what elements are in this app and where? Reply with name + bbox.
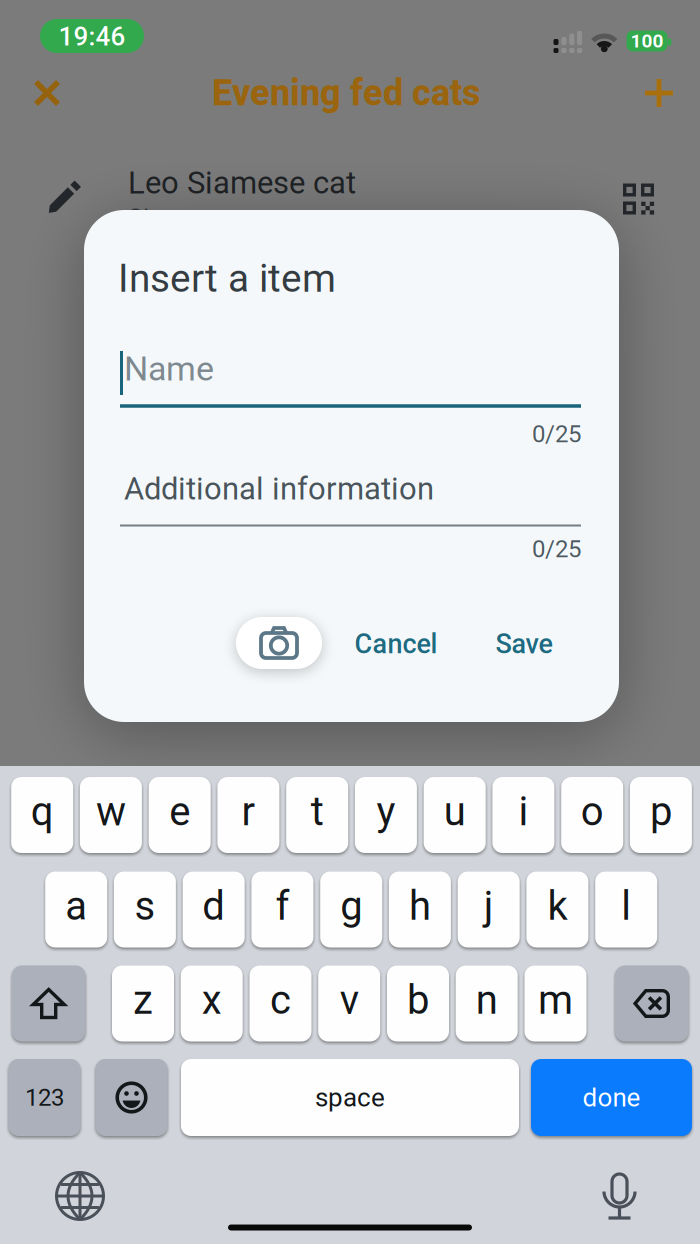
staticText: o bbox=[581, 788, 604, 835]
button[interactable]: 123 bbox=[8, 1059, 80, 1136]
button[interactable]: y bbox=[355, 777, 417, 853]
button[interactable]: Add bbox=[645, 79, 673, 107]
staticText: g bbox=[340, 883, 362, 929]
staticText: n bbox=[476, 977, 498, 1023]
button[interactable]: Delete bbox=[615, 965, 688, 1041]
staticText: Leo Siamese cat bbox=[128, 165, 356, 201]
button[interactable]: s bbox=[114, 871, 176, 947]
button[interactable]: i bbox=[492, 777, 554, 853]
button[interactable]: Emoji bbox=[95, 1059, 167, 1136]
button[interactable]: d bbox=[183, 871, 245, 947]
button[interactable]: u bbox=[424, 777, 486, 853]
staticText: Siamese bbox=[128, 204, 224, 234]
staticText: q bbox=[31, 788, 54, 835]
button[interactable]: a bbox=[45, 871, 107, 947]
staticText: Name bbox=[124, 349, 214, 389]
button[interactable]: g bbox=[320, 871, 382, 947]
staticText: Additional information bbox=[124, 471, 434, 507]
staticText: j bbox=[484, 883, 494, 929]
staticText: b bbox=[407, 977, 429, 1023]
button[interactable]: k bbox=[526, 871, 588, 947]
staticText: l bbox=[621, 883, 631, 929]
button[interactable]: b bbox=[387, 965, 449, 1041]
button[interactable]: j bbox=[458, 871, 520, 947]
button[interactable]: Cancel bbox=[354, 628, 437, 660]
button[interactable]: z bbox=[112, 965, 174, 1041]
staticText: t bbox=[311, 788, 324, 835]
button[interactable]: c bbox=[249, 965, 311, 1041]
staticText: u bbox=[444, 788, 466, 835]
button[interactable]: n bbox=[456, 965, 518, 1041]
staticText: Evening fed cats bbox=[212, 72, 480, 114]
staticText: p bbox=[650, 788, 672, 835]
staticText: Cancel bbox=[354, 628, 437, 660]
staticText: a bbox=[65, 883, 87, 929]
button[interactable]: x bbox=[181, 965, 243, 1041]
button[interactable]: q bbox=[11, 777, 73, 853]
button[interactable]: Edit bbox=[48, 181, 80, 214]
staticText: c bbox=[270, 977, 291, 1023]
staticText: v bbox=[340, 977, 359, 1023]
button[interactable]: r bbox=[217, 777, 279, 853]
staticText: s bbox=[134, 883, 155, 929]
button[interactable]: o bbox=[561, 777, 623, 853]
staticText: x bbox=[202, 977, 222, 1023]
button[interactable]: Dictation bbox=[603, 1172, 635, 1219]
staticText: Insert a item bbox=[118, 256, 336, 301]
staticText: e bbox=[169, 788, 190, 835]
button[interactable]: v bbox=[318, 965, 380, 1041]
button[interactable]: QR code bbox=[623, 183, 654, 214]
staticText: i bbox=[518, 788, 528, 835]
button[interactable]: p bbox=[630, 777, 692, 853]
staticText: y bbox=[376, 788, 395, 835]
staticText: 0/25 bbox=[532, 535, 581, 563]
staticText: d bbox=[202, 883, 225, 929]
staticText: w bbox=[96, 788, 126, 835]
button[interactable]: f bbox=[251, 871, 313, 947]
button[interactable]: Close bbox=[33, 79, 61, 107]
button[interactable]: Switch keyboard bbox=[55, 1171, 105, 1221]
staticText: r bbox=[241, 788, 255, 835]
staticText: k bbox=[547, 883, 567, 929]
button[interactable]: l bbox=[595, 871, 657, 947]
staticText: m bbox=[538, 977, 573, 1023]
staticText: space bbox=[315, 1082, 385, 1113]
button[interactable]: space bbox=[181, 1059, 519, 1136]
staticText: 100 bbox=[630, 30, 663, 52]
staticText: h bbox=[409, 883, 431, 929]
button[interactable]: Save bbox=[495, 628, 552, 660]
staticText: z bbox=[133, 977, 153, 1023]
button[interactable]: t bbox=[286, 777, 348, 853]
button[interactable]: h bbox=[389, 871, 451, 947]
staticText: 123 bbox=[25, 1083, 64, 1111]
staticText: 0/25 bbox=[532, 420, 581, 448]
button[interactable]: Take photo bbox=[236, 617, 322, 669]
button[interactable]: Shift bbox=[12, 965, 85, 1041]
button[interactable]: done bbox=[531, 1059, 692, 1136]
button[interactable]: e bbox=[149, 777, 211, 853]
staticText: done bbox=[582, 1082, 640, 1113]
button[interactable]: m bbox=[524, 965, 586, 1041]
staticText: 19:46 bbox=[58, 21, 125, 52]
button[interactable]: w bbox=[80, 777, 142, 853]
staticText: f bbox=[275, 883, 289, 929]
staticText: Save bbox=[495, 628, 552, 660]
